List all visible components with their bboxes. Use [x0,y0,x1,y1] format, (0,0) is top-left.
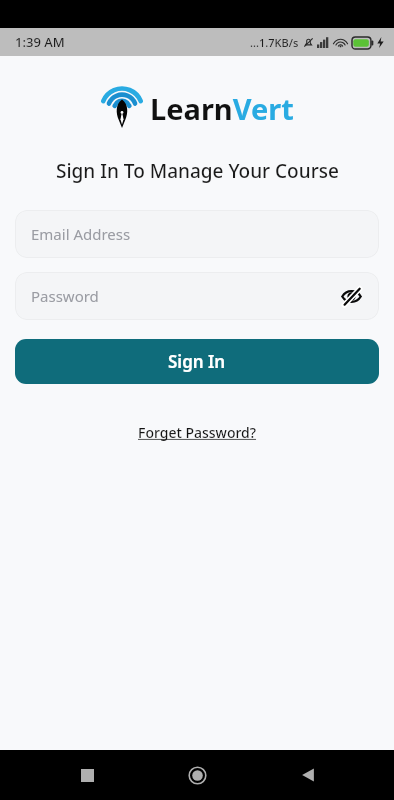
button[interactable]: Home [173,751,221,799]
staticText: Password [31,286,99,306]
button[interactable]: Email Address [15,210,379,258]
button[interactable]: Forget Password? [132,420,263,445]
staticText: LearnVert [150,89,294,128]
staticText: Email Address [31,224,131,244]
staticText: Sign In [168,350,226,373]
staticText: 1:39 AM [15,33,65,51]
staticText: ...1.7KB/s [250,35,299,50]
staticText: Sign In To Manage Your Course [56,158,339,184]
button[interactable]: Recent apps [63,751,111,799]
button[interactable]: Back [284,751,332,799]
button[interactable]: Password [15,272,379,320]
button[interactable]: Show password [337,282,365,310]
staticText: Forget Password? [138,423,257,442]
button[interactable]: Sign In [15,339,379,384]
